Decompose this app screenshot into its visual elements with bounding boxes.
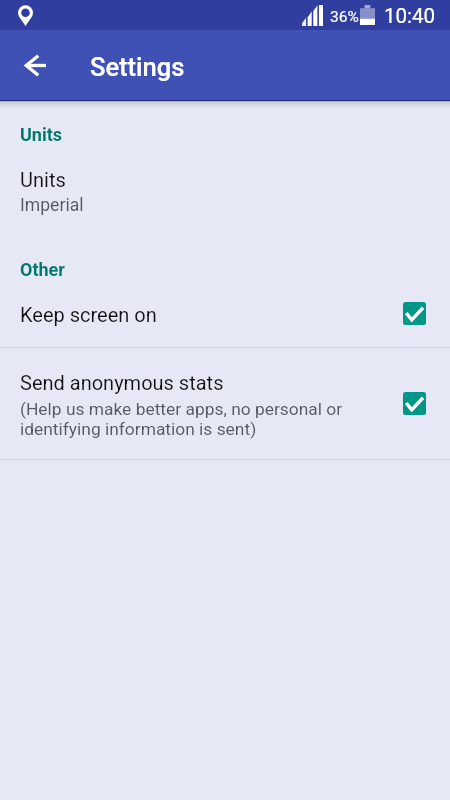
staticText: Units	[20, 124, 63, 145]
staticText: 36%	[330, 8, 359, 26]
staticText: (Help us make better apps, no personal o…	[20, 399, 350, 439]
staticText: Units	[20, 168, 66, 191]
button[interactable]: Keep screen on	[0, 288, 450, 347]
button[interactable]: Send anonymous stats, enabled	[403, 392, 426, 415]
staticText: Imperial	[20, 195, 84, 216]
staticText: Other	[20, 259, 65, 280]
button[interactable]: Back	[9, 39, 61, 91]
staticText: 10:40	[384, 4, 436, 28]
button[interactable]: Keep screen on, enabled	[403, 302, 426, 325]
staticText: Settings	[90, 52, 185, 82]
button[interactable]: Send anonymous stats	[0, 348, 450, 459]
button[interactable]: Units	[0, 158, 450, 220]
staticText: Keep screen on	[20, 303, 157, 326]
staticText: Send anonymous stats	[20, 371, 224, 394]
